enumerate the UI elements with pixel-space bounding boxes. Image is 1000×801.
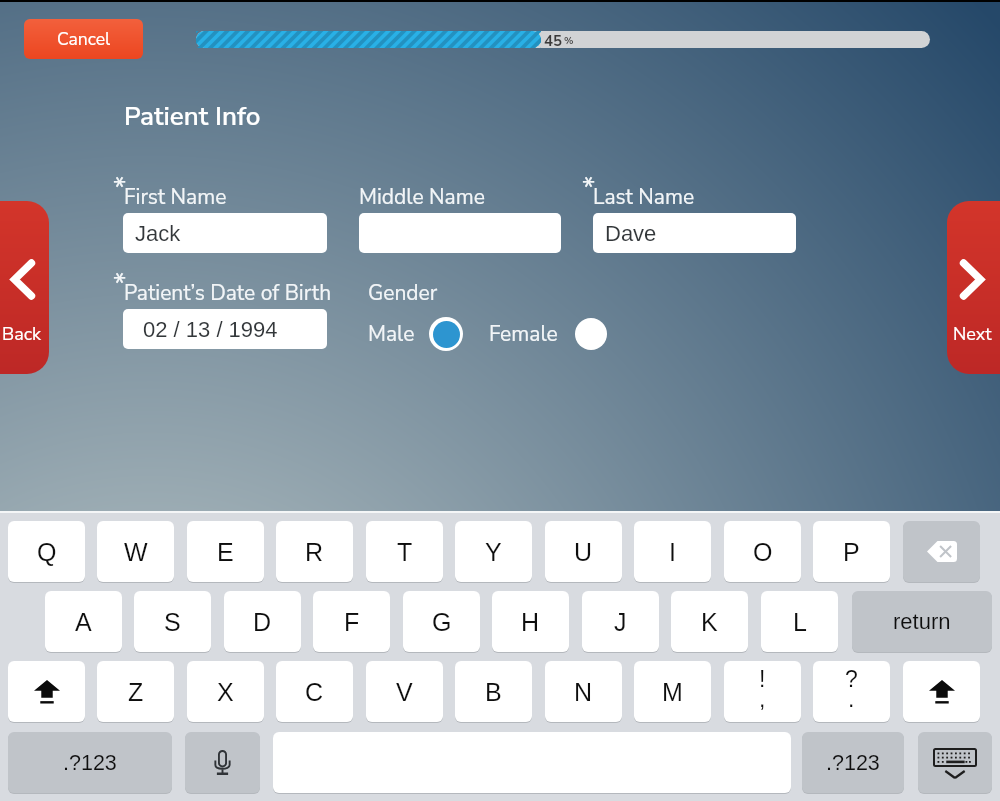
staticText: Patient Info: [124, 99, 261, 134]
button[interactable]: D: [224, 591, 301, 652]
staticText: A: [75, 608, 92, 636]
button[interactable]: R: [276, 521, 353, 582]
staticText: Jack: [135, 221, 181, 246]
button[interactable]: L: [761, 591, 838, 652]
button[interactable]: Z: [97, 661, 174, 722]
button[interactable]: Y: [455, 521, 532, 582]
button[interactable]: Dave: [593, 213, 796, 253]
staticText: Z: [128, 678, 144, 706]
staticText: T: [397, 538, 413, 566]
button[interactable]: C: [276, 661, 353, 722]
button[interactable]: [359, 213, 561, 253]
staticText: *: [582, 168, 596, 208]
button[interactable]: K: [671, 591, 748, 652]
staticText: ,: [759, 686, 766, 712]
staticText: U: [574, 538, 593, 566]
button[interactable]: I: [634, 521, 711, 582]
staticText: .: [848, 686, 855, 712]
staticText: H: [521, 608, 540, 636]
button[interactable]: W: [97, 521, 174, 582]
button[interactable]: Next: [947, 201, 1000, 374]
staticText: V: [396, 678, 413, 706]
staticText: !: [759, 666, 766, 692]
staticText: *: [113, 264, 127, 304]
staticText: D: [253, 608, 272, 636]
button[interactable]: !: [724, 661, 801, 722]
staticText: K: [701, 608, 718, 636]
staticText: P: [843, 538, 860, 566]
button[interactable]: Q: [8, 521, 85, 582]
staticText: L: [793, 608, 807, 636]
staticText: %: [564, 34, 574, 48]
staticText: Patient’s Date of Birth: [124, 279, 332, 308]
button[interactable]: B: [455, 661, 532, 722]
staticText: First Name: [124, 183, 227, 212]
staticText: return: [893, 609, 951, 634]
button[interactable]: G: [403, 591, 480, 652]
staticText: Y: [485, 538, 502, 566]
button[interactable]: [429, 317, 463, 351]
staticText: M: [662, 678, 683, 706]
button[interactable]: X: [187, 661, 264, 722]
staticText: 45: [544, 31, 563, 48]
button[interactable]: V: [366, 661, 443, 722]
staticText: Male: [368, 320, 415, 349]
staticText: .?123: [63, 751, 117, 775]
staticText: J: [614, 608, 627, 636]
staticText: S: [164, 608, 181, 636]
button[interactable]: Voice input: [185, 732, 260, 793]
staticText: .?123: [826, 751, 880, 775]
button[interactable]: A: [45, 591, 122, 652]
button[interactable]: Hide keyboard: [918, 732, 992, 793]
staticText: Last Name: [593, 183, 695, 212]
button[interactable]: M: [634, 661, 711, 722]
button[interactable]: Backspace: [903, 521, 980, 582]
button[interactable]: H: [492, 591, 569, 652]
staticText: R: [305, 538, 324, 566]
staticText: *: [113, 168, 127, 208]
staticText: I: [669, 538, 676, 566]
staticText: F: [344, 608, 360, 636]
button[interactable]: U: [545, 521, 622, 582]
button[interactable]: P: [813, 521, 890, 582]
staticText: E: [217, 538, 234, 566]
button[interactable]: 02 / 13 / 1994: [123, 309, 327, 349]
staticText: Back: [2, 322, 42, 347]
staticText: O: [753, 538, 773, 566]
staticText: Cancel: [57, 27, 111, 51]
staticText: Next: [953, 322, 992, 347]
button[interactable]: O: [724, 521, 801, 582]
button[interactable]: N: [545, 661, 622, 722]
staticText: 02 / 13 / 1994: [143, 317, 278, 342]
button[interactable]: S: [134, 591, 211, 652]
staticText: Gender: [368, 279, 438, 308]
button[interactable]: Cancel: [24, 19, 143, 59]
staticText: C: [305, 678, 324, 706]
button[interactable]: F: [313, 591, 390, 652]
button[interactable]: E: [187, 521, 264, 582]
button[interactable]: [575, 318, 607, 350]
button[interactable]: .?123: [802, 732, 904, 793]
button[interactable]: .?123: [8, 732, 172, 793]
button[interactable]: Jack: [123, 213, 327, 253]
staticText: N: [574, 678, 593, 706]
staticText: Dave: [605, 221, 657, 246]
button[interactable]: Shift: [8, 661, 85, 722]
button[interactable]: ?: [813, 661, 890, 722]
button[interactable]: return: [852, 591, 992, 652]
button[interactable]: Back: [0, 201, 49, 374]
staticText: G: [432, 608, 452, 636]
staticText: W: [124, 538, 148, 566]
staticText: Q: [37, 538, 57, 566]
staticText: X: [217, 678, 234, 706]
button[interactable]: J: [582, 591, 659, 652]
staticText: ?: [845, 666, 858, 692]
staticText: Female: [489, 320, 558, 349]
button[interactable]: T: [366, 521, 443, 582]
staticText: Middle Name: [359, 183, 485, 212]
staticText: B: [485, 678, 502, 706]
button[interactable]: Shift: [903, 661, 980, 722]
